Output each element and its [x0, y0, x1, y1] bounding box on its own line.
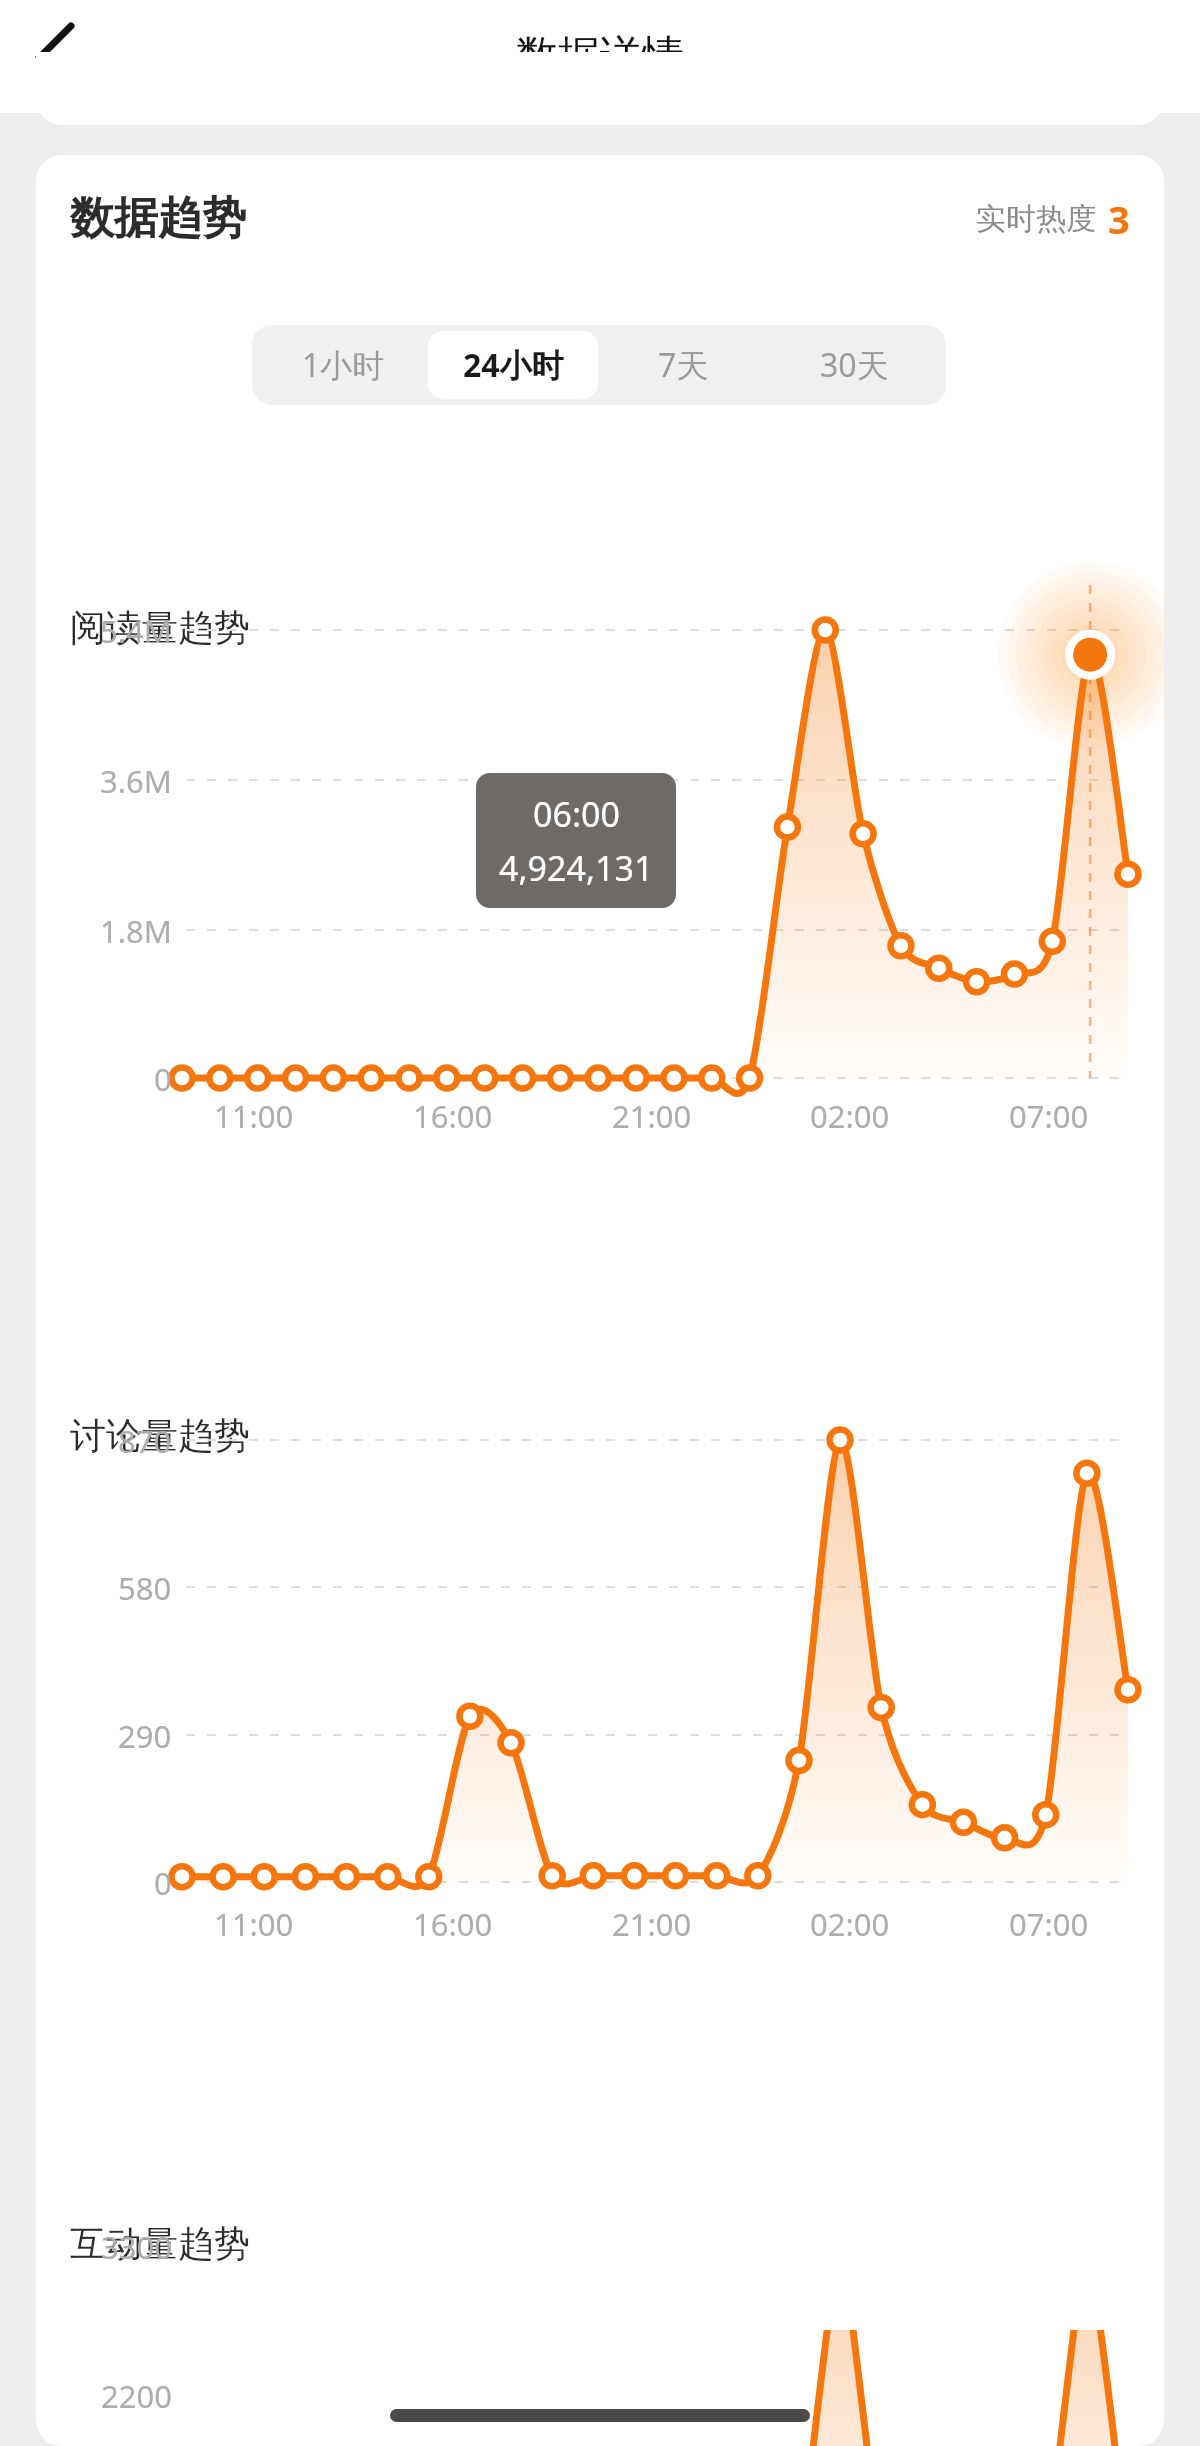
button[interactable]: 24小时	[428, 331, 598, 399]
staticText: 阅读量趋势	[70, 605, 250, 650]
staticText: 互动量趋势	[70, 2221, 250, 2266]
staticText: 数据趋势	[70, 191, 246, 246]
staticText: 1.8M	[100, 910, 172, 952]
button[interactable]: 1小时	[258, 331, 428, 399]
staticText: 06:00	[533, 791, 620, 837]
staticText: 21:00	[612, 1095, 692, 1137]
button[interactable]: 7天	[598, 331, 769, 399]
staticText: 数据详情	[516, 30, 684, 83]
staticText: 5.4M	[100, 610, 172, 652]
staticText: 7天	[658, 343, 709, 387]
staticText: 21:00	[612, 1903, 692, 1945]
staticText: 02:00	[810, 1095, 890, 1137]
staticText: 3	[1108, 193, 1130, 245]
staticText: 11:00	[214, 1903, 294, 1945]
staticText: 24小时	[463, 343, 564, 387]
staticText: 实时热度	[976, 200, 1096, 238]
staticText: 2200	[101, 2375, 172, 2417]
staticText: 02:00	[810, 1903, 890, 1945]
staticText: 07:00	[1009, 1095, 1089, 1137]
staticText: 1小时	[302, 343, 385, 387]
button[interactable]: 30天	[769, 331, 940, 399]
staticText: 11:00	[214, 1095, 294, 1137]
staticText: 870	[118, 1420, 172, 1462]
staticText: 0	[154, 1862, 172, 1904]
staticText: 讨论量趋势	[70, 1413, 250, 1458]
staticText: 3.6M	[100, 760, 172, 802]
staticText: 580	[118, 1567, 172, 1609]
staticText: 30天	[820, 343, 889, 387]
staticText: 290	[118, 1715, 172, 1757]
staticText: 07:00	[1009, 1903, 1089, 1945]
staticText: 16:00	[413, 1903, 493, 1945]
staticText: 0	[154, 1058, 172, 1100]
staticText: 4,924,131	[499, 845, 654, 891]
staticText: 3300	[101, 2226, 172, 2268]
staticText: 16:00	[413, 1095, 493, 1137]
button[interactable]: Back	[6, 8, 104, 106]
